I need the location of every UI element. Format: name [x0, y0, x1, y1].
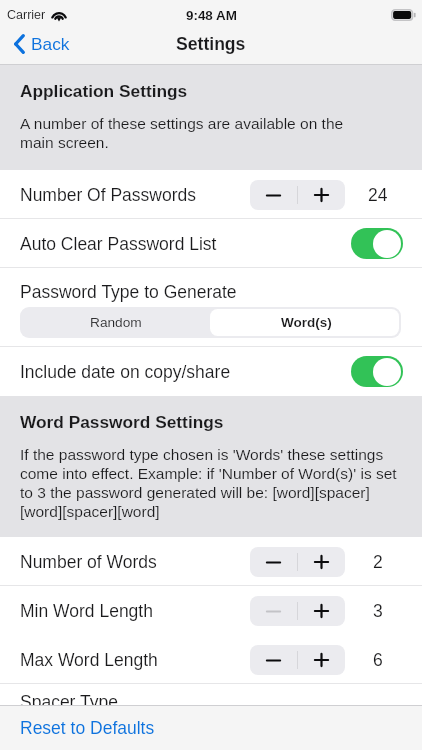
- button[interactable]: Increase: [298, 596, 345, 626]
- staticText: Settings: [176, 34, 246, 54]
- staticText: Application Settings: [20, 81, 188, 100]
- button[interactable]: Decrease: [250, 180, 297, 210]
- button[interactable]: Toggle: [351, 228, 403, 259]
- staticText: Number Of Passwords: [20, 185, 197, 205]
- staticText: Random: [90, 315, 142, 330]
- staticText: Carrier: [7, 8, 46, 22]
- staticText: 24: [368, 185, 388, 205]
- staticText: Max Word Length: [20, 650, 158, 670]
- staticText: Word Password Settings: [20, 412, 224, 431]
- staticText: A number of these settings are available…: [20, 115, 352, 151]
- button[interactable]: Reset to Defaults: [20, 705, 155, 750]
- button[interactable]: Decrease: [250, 547, 297, 577]
- button[interactable]: Random: [22, 309, 210, 336]
- staticText: Back: [31, 34, 70, 53]
- button[interactable]: Increase: [298, 180, 345, 210]
- staticText: 6: [373, 650, 383, 670]
- button[interactable]: Toggle: [351, 356, 403, 387]
- staticText: 2: [373, 552, 383, 572]
- button[interactable]: Increase: [298, 547, 345, 577]
- button[interactable]: Back: [14, 30, 70, 65]
- staticText: Min Word Length: [20, 601, 153, 621]
- staticText: Password Type to Generate: [20, 282, 237, 302]
- button[interactable]: Decrease: [250, 596, 297, 626]
- staticText: Auto Clear Password List: [20, 234, 217, 254]
- staticText: 3: [373, 601, 383, 621]
- staticText: Number of Words: [20, 552, 157, 572]
- button[interactable]: Increase: [298, 645, 345, 675]
- button[interactable]: Word(s): [210, 309, 399, 336]
- staticText: Include date on copy/share: [20, 362, 231, 382]
- staticText: Reset to Defaults: [20, 718, 155, 738]
- staticText: Spacer Type: [20, 692, 118, 712]
- staticText: Word(s): [281, 315, 332, 330]
- staticText: If the password type chosen is 'Words' t…: [20, 446, 400, 520]
- staticText: 9:48 AM: [186, 8, 237, 23]
- button[interactable]: Decrease: [250, 645, 297, 675]
